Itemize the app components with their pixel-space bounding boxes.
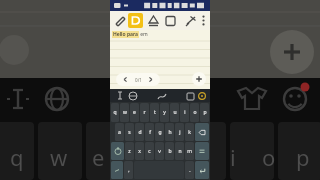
button[interactable]: g	[155, 123, 164, 141]
staticText: ,	[128, 167, 130, 174]
button[interactable]: Format	[113, 12, 128, 29]
staticText: o	[193, 109, 197, 116]
button[interactable]: Clipboard	[184, 89, 195, 102]
button[interactable]: q	[111, 103, 119, 122]
button[interactable]: ,	[124, 161, 133, 179]
button[interactable]: Handwriting	[155, 89, 166, 102]
button[interactable]: w	[120, 103, 129, 122]
button[interactable]: f	[145, 123, 154, 141]
staticText: .	[189, 167, 191, 174]
button[interactable]: k	[185, 123, 194, 141]
button[interactable]: Backspace	[195, 123, 209, 141]
button[interactable]: .	[185, 161, 194, 179]
button[interactable]: c	[145, 142, 154, 160]
staticText: a	[118, 129, 121, 136]
staticText: v	[158, 148, 161, 155]
staticText: y	[163, 109, 166, 116]
button[interactable]: Symbols	[111, 161, 123, 179]
staticText: s	[128, 129, 131, 136]
staticText: e	[133, 109, 136, 116]
staticText: h	[168, 129, 172, 136]
staticText: e	[92, 142, 105, 172]
button[interactable]: u	[170, 103, 179, 122]
staticText: r	[143, 109, 146, 116]
staticText: w	[123, 109, 127, 116]
button[interactable]: s	[125, 123, 134, 141]
staticText: q	[113, 109, 117, 116]
staticText: z	[128, 148, 131, 155]
staticText: f	[149, 129, 151, 136]
button[interactable]: Symbols	[195, 142, 209, 160]
button[interactable]: a	[115, 123, 124, 141]
button[interactable]: y	[160, 103, 169, 122]
staticText: m	[187, 148, 192, 155]
button[interactable]: d	[135, 123, 144, 141]
button[interactable]: Settings	[196, 89, 207, 102]
button[interactable]: j	[175, 123, 184, 141]
staticText: x	[138, 148, 141, 155]
staticText: w	[50, 142, 68, 172]
staticText: em	[139, 31, 148, 38]
button[interactable]: o	[190, 103, 199, 122]
staticText: n	[178, 148, 182, 155]
button[interactable]: More options	[198, 11, 208, 30]
button[interactable]: b	[165, 142, 174, 160]
button[interactable]: e	[130, 103, 139, 122]
button[interactable]: n	[175, 142, 184, 160]
button[interactable]: 0/1	[116, 73, 160, 86]
button[interactable]: Shift	[111, 142, 124, 160]
staticText: g	[158, 129, 162, 136]
staticText: j	[179, 129, 181, 136]
staticText: i	[184, 109, 186, 116]
staticText: d	[138, 129, 142, 136]
staticText: q	[10, 142, 24, 172]
staticText: b	[168, 148, 172, 155]
button[interactable]: Language	[127, 89, 138, 102]
button[interactable]: h	[165, 123, 174, 141]
staticText: 0/1	[135, 77, 142, 83]
button[interactable]: v	[155, 142, 164, 160]
button[interactable]: Brush	[146, 12, 161, 29]
button[interactable]: Enter	[195, 161, 209, 179]
staticText: i	[230, 142, 236, 172]
button[interactable]: m	[185, 142, 194, 160]
staticText: k	[188, 129, 191, 136]
button[interactable]: r	[140, 103, 149, 122]
button[interactable]: Add	[192, 72, 206, 86]
button[interactable]: Pin	[183, 12, 198, 29]
button[interactable]: x	[135, 142, 144, 160]
button[interactable]: z	[125, 142, 134, 160]
button[interactable]: i	[180, 103, 189, 122]
staticText: p	[203, 109, 207, 116]
staticText: c	[148, 148, 151, 155]
button[interactable]: p	[200, 103, 209, 122]
button[interactable]: t	[150, 103, 159, 122]
button[interactable]: Cursor control	[114, 89, 125, 102]
button[interactable]: Insert	[163, 12, 178, 29]
staticText: p	[296, 142, 310, 172]
staticText: t	[154, 109, 156, 116]
button[interactable]: Hello para	[112, 31, 148, 38]
staticText: u	[173, 109, 177, 116]
staticText: Hello para	[113, 31, 138, 38]
staticText: o	[262, 142, 276, 172]
button[interactable]: Highlighter	[128, 13, 143, 28]
